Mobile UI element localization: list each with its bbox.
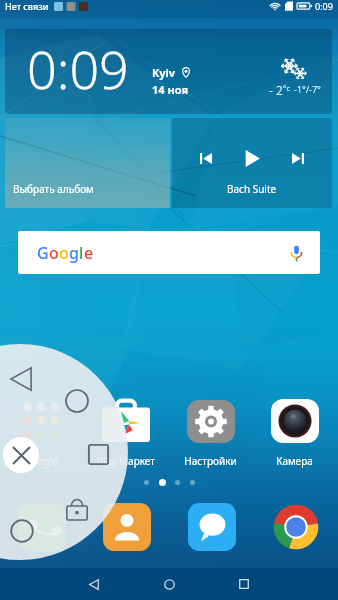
button[interactable]: Next track: [285, 145, 311, 171]
staticText: g: [69, 242, 79, 264]
button[interactable]: Contacts: [84, 503, 169, 551]
staticText: Нет связи: [5, 0, 49, 12]
button[interactable]: Previous track: [193, 145, 219, 171]
button[interactable]: Lock screen: [64, 495, 90, 521]
staticText: Bach Suite: [227, 182, 277, 196]
button[interactable]: Messages: [169, 503, 254, 551]
staticText: e: [84, 242, 94, 264]
staticText: Камера: [276, 454, 313, 468]
button[interactable]: Voice search: [285, 242, 307, 264]
staticText: o: [49, 242, 59, 264]
staticText: Play Маркет: [97, 454, 155, 468]
staticText: Kyiv: [152, 65, 176, 80]
staticText: - 2: [269, 82, 283, 98]
staticText: -1°/-7°: [294, 83, 321, 95]
staticText: 0:09: [27, 33, 129, 104]
staticText: Выбрать альбом: [13, 182, 94, 196]
staticText: Google: [24, 454, 58, 468]
button[interactable]: Back: [72, 568, 116, 600]
button[interactable]: Play Маркет: [83, 399, 168, 468]
button[interactable]: Phone: [0, 503, 84, 551]
button[interactable]: Play: [237, 143, 267, 173]
button[interactable]: Home: [147, 568, 191, 600]
button[interactable]: Recents: [87, 443, 110, 466]
staticText: 0:09: [315, 0, 333, 12]
button[interactable]: Google: [0, 399, 83, 468]
button[interactable]: Recents: [222, 568, 266, 600]
staticText: °c: [283, 82, 291, 93]
button[interactable]: Back: [8, 366, 34, 392]
button[interactable]: Home: [64, 388, 90, 414]
button[interactable]: Выбрать альбом: [5, 118, 170, 208]
staticText: Настройки: [184, 454, 237, 468]
staticText: G: [37, 242, 49, 264]
button[interactable]: G: [18, 231, 320, 274]
button[interactable]: Chrome: [254, 503, 337, 551]
staticText: o: [59, 242, 69, 264]
staticText: 14 ноя: [152, 82, 189, 97]
staticText: l: [79, 242, 84, 264]
button[interactable]: Rotate screen: [9, 518, 35, 544]
button[interactable]: Камера: [253, 399, 336, 468]
button[interactable]: 0:09: [5, 29, 332, 114]
button[interactable]: Настройки: [168, 399, 253, 468]
button[interactable]: Close menu: [3, 437, 39, 473]
